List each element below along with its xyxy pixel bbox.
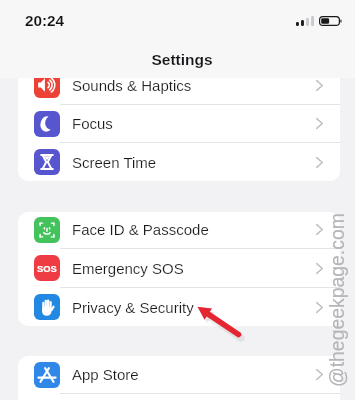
staticText: Focus: [72, 115, 113, 132]
staticText: Settings: [151, 51, 213, 68]
staticText: Sounds & Haptics: [72, 78, 192, 94]
other: Sounds and Haptics: [34, 78, 60, 98]
staticText: Emergency SOS: [72, 260, 184, 277]
button[interactable]: Focus: [18, 105, 340, 142]
staticText: Face ID & Passcode: [72, 221, 209, 238]
other: Pointer: [0, 78, 355, 400]
button[interactable]: Privacy and Security: [18, 288, 340, 326]
staticText: 20:24: [25, 12, 65, 29]
staticText: Privacy & Security: [72, 299, 194, 316]
button[interactable]: Screen Time: [18, 143, 340, 181]
other: App Store: [34, 362, 60, 388]
staticText: Screen Time: [72, 154, 157, 171]
staticText: SOS: [37, 263, 57, 274]
other: Screen Time: [34, 149, 60, 175]
other: Face ID and Passcode: [34, 217, 60, 243]
button[interactable]: Sounds and Haptics: [18, 78, 340, 104]
button[interactable]: App Store: [18, 356, 340, 393]
button[interactable]: Emergency SOS: [18, 249, 340, 287]
button[interactable]: Face ID and Passcode: [18, 212, 340, 248]
other: Emergency SOS: [34, 255, 60, 281]
other: Focus: [34, 111, 60, 137]
other: Privacy and Security: [34, 294, 60, 320]
staticText: @thegeekpage.com: [326, 213, 348, 387]
staticText: App Store: [72, 366, 139, 383]
